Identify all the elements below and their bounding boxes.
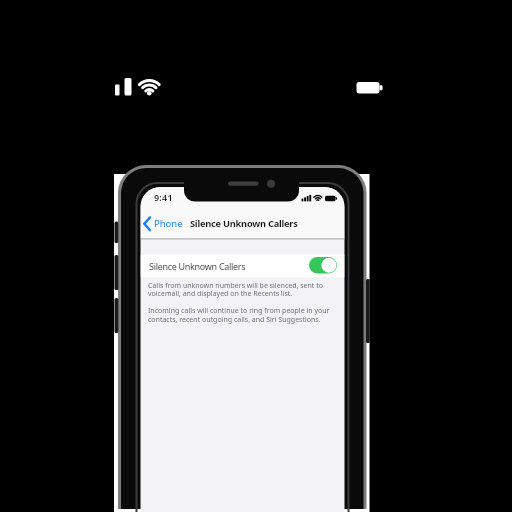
staticText: Silence Unknown Callers bbox=[190, 217, 298, 230]
staticText: Silence Unknown Callers bbox=[149, 260, 246, 272]
staticText: Incoming calls will continue to ring fro… bbox=[148, 306, 330, 316]
button[interactable] bbox=[309, 257, 337, 274]
staticText: contacts, recent outgoing calls, and Sir… bbox=[148, 315, 321, 325]
button[interactable]: Silence Unknown Callers bbox=[141, 255, 345, 278]
staticText: 9:41 bbox=[154, 191, 173, 203]
staticText: voicemail, and displayed on the Recents … bbox=[148, 289, 293, 299]
button[interactable]: Phone bbox=[142, 213, 184, 233]
staticText: Phone bbox=[154, 217, 183, 230]
staticText: Calls from unknown numbers will be silen… bbox=[148, 281, 323, 291]
